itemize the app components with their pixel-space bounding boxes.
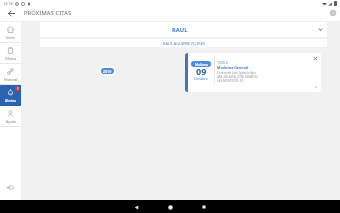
staticText: Medicina General [217, 65, 249, 70]
button[interactable]: Atrás [130, 201, 142, 213]
staticText: 09 [196, 65, 207, 77]
staticText: Oficina [5, 56, 17, 61]
button[interactable]: Recientes [198, 201, 210, 213]
button[interactable]: Oficina [0, 43, 21, 64]
staticText: Mañana [195, 62, 208, 67]
staticText: RAUL AGUIRRE FLORES [163, 41, 205, 46]
staticText: 12:18 [3, 1, 13, 6]
button[interactable]: Cerrar [310, 53, 321, 64]
button[interactable]: Mañana [185, 53, 321, 92]
staticText: LAS MERCEDES 23 [217, 79, 244, 83]
staticText: Octubre [194, 76, 208, 81]
button[interactable]: Inicio [0, 22, 21, 43]
button[interactable]: 2019 [101, 68, 114, 74]
staticText: Historial [4, 77, 18, 82]
staticText: PRÓXIMAS CITAS [24, 9, 72, 17]
button[interactable]: Inicio [164, 201, 176, 213]
button[interactable]: Ajustes [326, 7, 339, 19]
button[interactable]: Cerrar sesión [0, 177, 21, 197]
button[interactable]: Alertas [0, 85, 21, 106]
staticText: AYA ZULAICA, JOSE IGNACIO [217, 75, 258, 79]
staticText: 2019 [103, 69, 112, 74]
button[interactable]: Más opciones [310, 81, 321, 92]
button[interactable]: Ayuda [0, 106, 21, 127]
staticText: 10:05 h. [217, 61, 229, 65]
staticText: 1 [17, 87, 19, 91]
staticText: Centro de Jose Ignacio Aya [217, 71, 256, 75]
staticText: Ayuda [6, 119, 16, 124]
staticText: RAUL [172, 26, 188, 34]
button[interactable]: RAUL AGUIRRE FLORES [40, 39, 327, 47]
staticText: Inicio [6, 35, 15, 40]
button[interactable]: Atrás [5, 7, 18, 19]
button[interactable]: RAUL [40, 22, 327, 37]
button[interactable]: Historial [0, 64, 21, 85]
staticText: Alertas [5, 98, 17, 103]
